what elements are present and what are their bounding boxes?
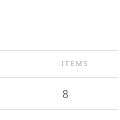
button[interactable]: 8 <box>0 78 120 109</box>
button[interactable]: ITEMS <box>0 51 120 77</box>
staticText: 8 <box>62 86 69 101</box>
staticText: ITEMS <box>61 59 89 69</box>
